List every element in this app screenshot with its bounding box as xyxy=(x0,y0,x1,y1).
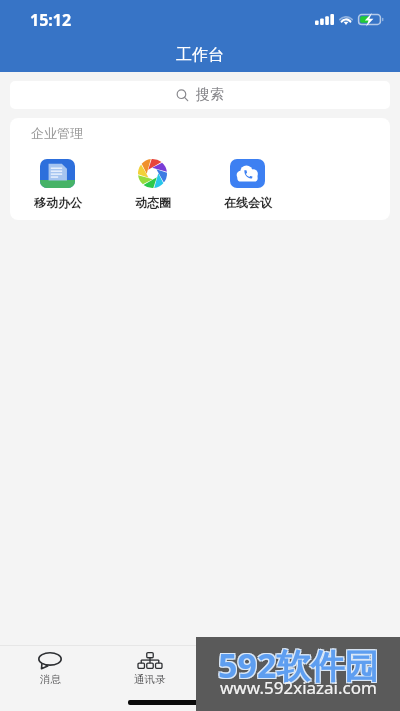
staticText: 企业管理 xyxy=(31,125,83,141)
other: 工作台 xyxy=(242,652,259,669)
staticText: 我 xyxy=(345,673,356,686)
button[interactable]: 搜索 xyxy=(10,81,390,109)
button[interactable]: 通讯录 xyxy=(100,646,200,711)
staticText: 通讯录 xyxy=(134,673,166,686)
staticText: 动态圈 xyxy=(135,195,171,210)
staticText: www.592xiazai.com xyxy=(220,676,377,699)
staticText: 592软件园 xyxy=(219,643,380,689)
staticText: 消息 xyxy=(40,673,61,686)
staticText: 592软件园 xyxy=(217,643,378,689)
staticText: 工作台 xyxy=(176,45,224,65)
button[interactable]: 动态圈 xyxy=(105,159,200,210)
other: 我 xyxy=(342,652,359,669)
other: 通讯录 xyxy=(138,652,162,669)
staticText: 592软件园 xyxy=(218,642,379,688)
staticText: 592软件园 xyxy=(219,641,380,687)
other: 消息 xyxy=(38,652,62,669)
staticText: 592软件园 xyxy=(217,641,378,687)
button[interactable]: 我 xyxy=(300,646,400,711)
staticText: 15:12 xyxy=(30,9,72,31)
button[interactable]: 在线会议 xyxy=(200,159,295,210)
button[interactable]: 移动办公 xyxy=(10,159,105,210)
staticText: 搜索 xyxy=(196,86,224,104)
button[interactable]: 消息 xyxy=(0,646,100,711)
staticText: 在线会议 xyxy=(224,195,272,210)
staticText: 移动办公 xyxy=(34,195,82,210)
button[interactable]: 工作台 xyxy=(200,646,300,711)
staticText: 工作台 xyxy=(234,673,266,686)
